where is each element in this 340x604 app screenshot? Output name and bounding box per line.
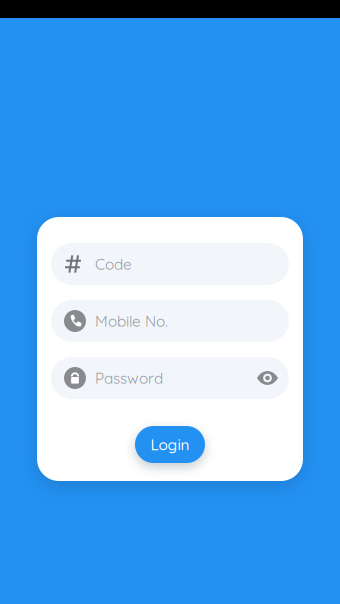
button[interactable]: Mobile No. bbox=[51, 300, 289, 342]
staticText: Password bbox=[95, 368, 163, 388]
staticText: Mobile No. bbox=[95, 311, 168, 331]
staticText: Login bbox=[150, 435, 189, 454]
staticText: Code bbox=[95, 254, 132, 274]
button[interactable]: Login bbox=[135, 426, 205, 463]
button[interactable]: Password bbox=[51, 357, 289, 399]
button[interactable]: Code bbox=[51, 243, 289, 285]
